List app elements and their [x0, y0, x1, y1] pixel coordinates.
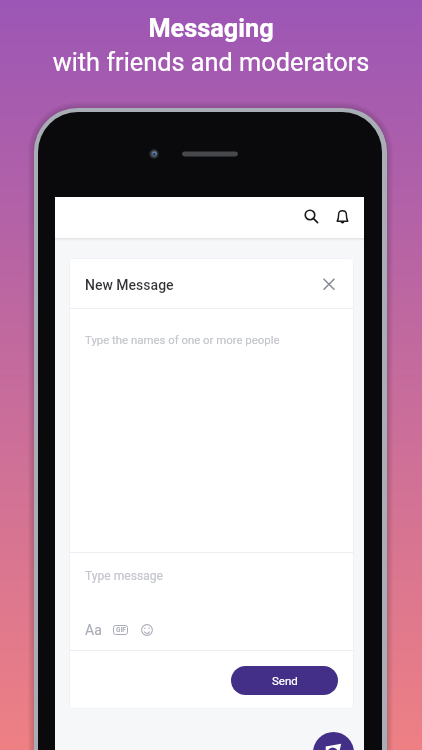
staticText: Send [272, 674, 298, 687]
button[interactable]: Emoji [141, 624, 153, 636]
button[interactable]: GIF [113, 625, 128, 635]
button[interactable]: Notifications [325, 198, 363, 236]
staticText: New Message [85, 277, 174, 293]
button[interactable]: New message [313, 732, 354, 750]
staticText: Messaging [0, 14, 422, 44]
staticText: Type the names of one or more people [85, 333, 280, 346]
button[interactable]: Aa [85, 622, 102, 638]
button[interactable]: Search [293, 198, 331, 236]
staticText: Type message [85, 569, 164, 583]
button[interactable]: Close [315, 271, 343, 299]
button[interactable]: Recipients [69, 309, 354, 552]
staticText: GIF [116, 626, 126, 634]
staticText: with friends and moderators [0, 48, 422, 78]
button[interactable]: Message [69, 553, 354, 650]
button[interactable]: Send [231, 666, 338, 695]
